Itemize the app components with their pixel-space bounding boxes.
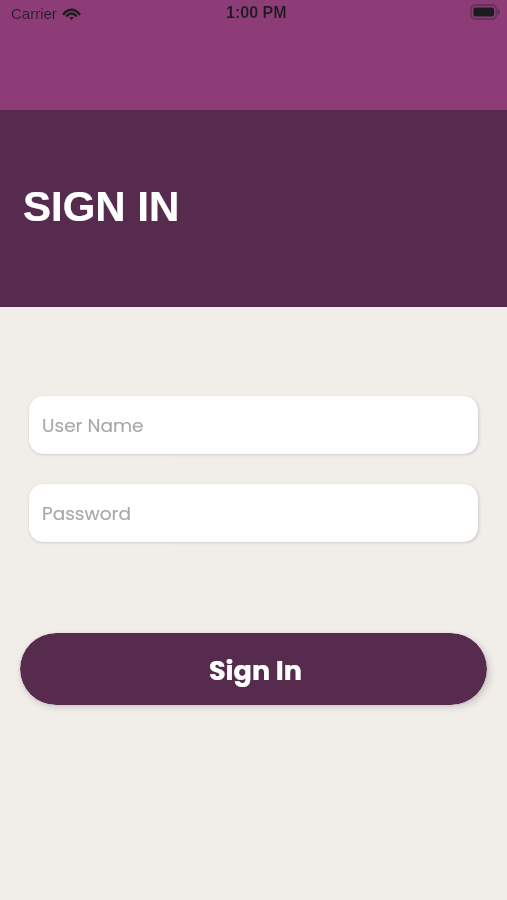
- staticText: SIGN IN: [23, 183, 180, 230]
- staticText: Sign In: [209, 652, 302, 690]
- staticText: Carrier: [11, 5, 57, 22]
- other: Wi-Fi: [62, 4, 81, 20]
- staticText: User Name: [42, 413, 144, 439]
- other: Battery: [471, 5, 500, 19]
- button[interactable]: Sign In: [20, 633, 487, 705]
- staticText: Password: [42, 501, 131, 527]
- button[interactable]: Password: [29, 484, 478, 542]
- staticText: 1:00 PM: [226, 4, 287, 22]
- button[interactable]: User Name: [29, 396, 478, 454]
